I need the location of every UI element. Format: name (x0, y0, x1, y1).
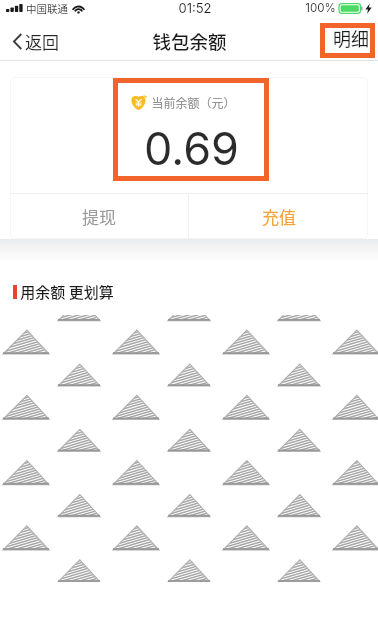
staticText: 0.69 (144, 121, 239, 175)
button[interactable]: 明细 (320, 23, 375, 58)
staticText: 用余额 更划算 (20, 281, 114, 303)
button[interactable]: 返回 (9, 23, 63, 60)
button[interactable]: 提现 (10, 194, 188, 239)
button[interactable]: 充值 (189, 194, 368, 239)
staticText: 100% (305, 1, 336, 15)
staticText: 明细 (333, 25, 369, 50)
staticText: 返回 (25, 29, 59, 54)
staticText: 钱包余额 (152, 28, 227, 55)
staticText: 提现 (82, 204, 116, 229)
staticText: 充值 (262, 204, 296, 229)
staticText: 01:52 (178, 0, 212, 16)
staticText: 当前余额（元） (151, 94, 236, 111)
staticText: 中国联通 (26, 1, 68, 16)
